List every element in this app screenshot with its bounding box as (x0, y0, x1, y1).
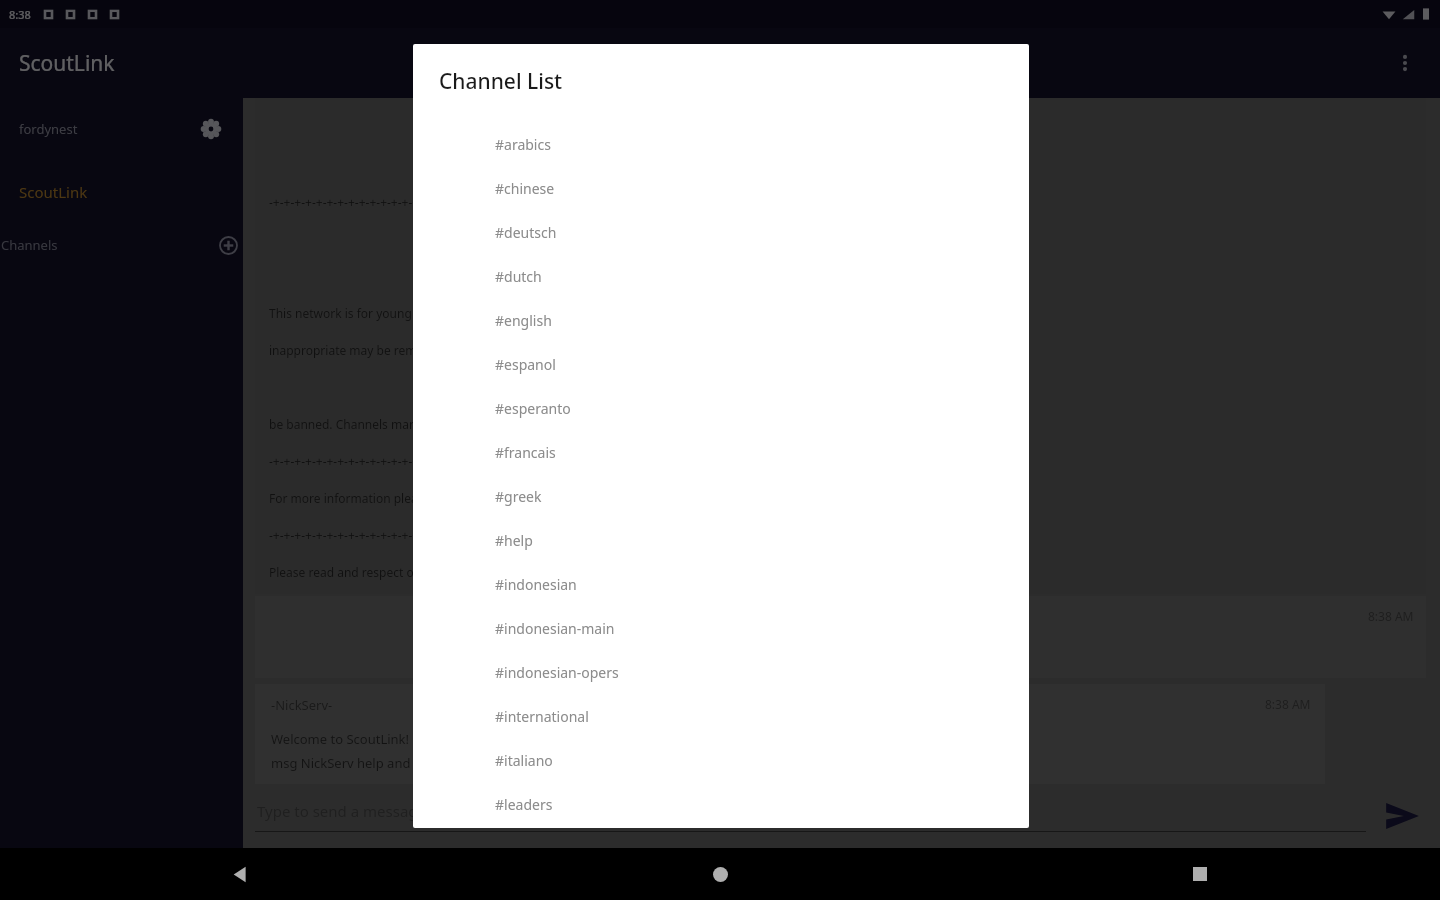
staticText: #help (495, 531, 533, 550)
staticText: #indonesian (495, 575, 577, 594)
button[interactable]: #leaders (413, 782, 1029, 826)
button[interactable]: #deutsch (413, 210, 1029, 254)
staticText: #francais (495, 443, 556, 462)
button[interactable]: Send (1378, 792, 1426, 840)
button[interactable]: #indonesian-opers (413, 650, 1029, 694)
staticText: ScoutLink (19, 182, 88, 202)
staticText: -NickServ- (271, 696, 333, 714)
staticText: #dutch (495, 267, 542, 286)
staticText: #international (495, 707, 589, 726)
staticText: -+-+-+-+-+-+-+-+-+-+-+-+-+-+-+-+-+-+-+-+… (269, 453, 602, 469)
staticText: Welcome to ScoutLink! Here you will find… (271, 730, 825, 748)
button[interactable]: #francais (413, 430, 1029, 474)
staticText: msg NickServ help and our staff will be … (271, 754, 599, 772)
staticText: Please read and respect our acceptable u… (269, 564, 549, 580)
button[interactable]: #esperanto (413, 386, 1029, 430)
button[interactable]: Home (689, 848, 751, 900)
button[interactable]: #international (413, 694, 1029, 738)
staticText: -+-+-+-+-+-+-+-+-+-+-+-+-+-+-+-+-+-+-+-+… (269, 527, 602, 543)
staticText: Channel List (439, 67, 563, 96)
staticText: Channels (1, 236, 58, 254)
staticText: 8:38 AM (1368, 608, 1414, 624)
button[interactable]: #italiano (413, 738, 1029, 782)
button[interactable]: Add channel (214, 231, 242, 259)
staticText: #esperanto (495, 399, 571, 418)
button[interactable]: Recent apps (1169, 848, 1231, 900)
button[interactable]: #greek (413, 474, 1029, 518)
staticText: ScoutLink (19, 49, 115, 78)
staticText: For more information please visit https:… (269, 490, 573, 506)
staticText: #english (495, 311, 552, 330)
button[interactable]: #arabics (413, 122, 1029, 166)
button[interactable]: #espanol (413, 342, 1029, 386)
staticText: 8:38 AM (1265, 696, 1311, 712)
staticText: #chinese (495, 179, 555, 198)
button[interactable]: #indonesian (413, 562, 1029, 606)
staticText: 8:38 (9, 7, 31, 22)
staticText: #italiano (495, 751, 553, 770)
button[interactable]: #dutch (413, 254, 1029, 298)
staticText: #arabics (495, 135, 551, 154)
staticText: #indonesian-main (495, 619, 615, 638)
staticText: #leaders (495, 795, 553, 814)
staticText: Type to send a message... (257, 801, 439, 821)
staticText: #deutsch (495, 223, 557, 242)
staticText: #greek (495, 487, 542, 506)
button[interactable]: ScoutLink (0, 160, 243, 224)
staticText: #indonesian-opers (495, 663, 619, 682)
button[interactable]: Back (209, 848, 271, 900)
staticText: be banned. Channels marked with a * are … (269, 416, 555, 432)
staticText: fordynest (19, 120, 78, 138)
button[interactable]: #chinese (413, 166, 1029, 210)
staticText: #espanol (495, 355, 556, 374)
staticText: -+-+-+-+-+-+-+-+-+-+-+-+-+-+-+-+-+-+-+-+… (269, 194, 602, 210)
button[interactable]: #help (413, 518, 1029, 562)
button[interactable]: #english (413, 298, 1029, 342)
staticText: inappropriate may be removed and offendi… (269, 342, 583, 358)
button[interactable]: Settings (197, 115, 225, 143)
button[interactable]: #indonesian-main (413, 606, 1029, 650)
staticText: This network is for young people aged 11… (269, 305, 577, 321)
button[interactable]: More options (1382, 40, 1428, 86)
button[interactable]: fordynest (0, 98, 243, 160)
